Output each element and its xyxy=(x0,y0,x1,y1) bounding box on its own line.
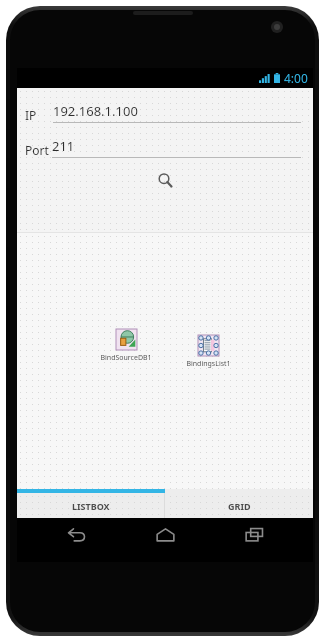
staticText: BindingsList1 xyxy=(186,359,231,369)
button[interactable]: 192.168.1.100 xyxy=(53,102,301,123)
button[interactable]: BindSourceDB1 xyxy=(100,329,152,363)
staticText: LISTBOX xyxy=(72,500,110,512)
button[interactable]: 211 xyxy=(52,137,301,158)
button[interactable]: GRID xyxy=(165,493,313,518)
staticText: 4:00 xyxy=(284,70,308,86)
staticText: IP xyxy=(25,107,37,123)
staticText: GRID xyxy=(228,500,251,512)
staticText: 211 xyxy=(52,137,75,155)
staticText: BindSourceDB1 xyxy=(100,353,152,363)
staticText: 192.168.1.100 xyxy=(53,102,138,120)
staticText: Port xyxy=(25,142,49,158)
button[interactable]: Back xyxy=(46,518,106,552)
button[interactable]: LISTBOX xyxy=(17,493,164,518)
button[interactable]: Recent apps xyxy=(224,518,284,552)
button[interactable]: BindingsList1 xyxy=(186,335,231,369)
button[interactable]: Search xyxy=(17,166,313,194)
button[interactable]: Home xyxy=(135,518,195,552)
